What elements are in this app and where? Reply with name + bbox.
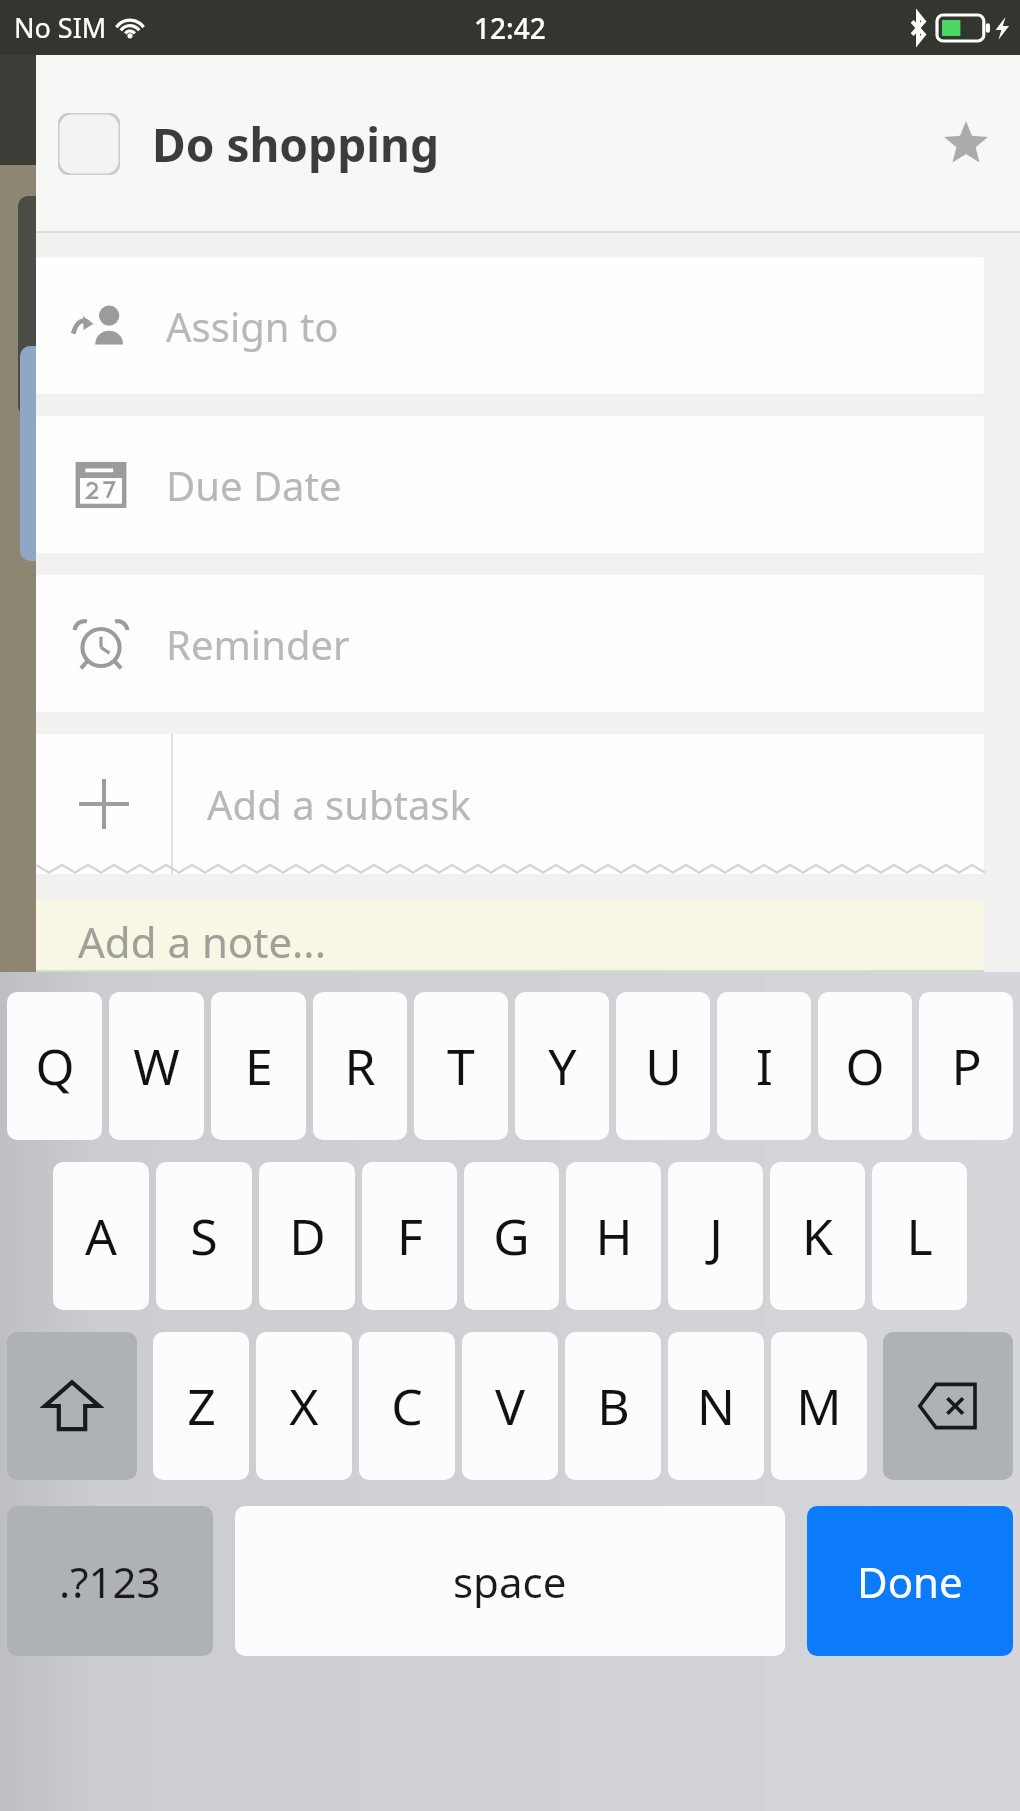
staticText: I: [756, 1032, 773, 1100]
staticText: M: [796, 1372, 842, 1440]
button[interactable]: N: [668, 1332, 764, 1480]
button[interactable]: L: [872, 1162, 967, 1310]
staticText: Add a subtask: [207, 777, 471, 831]
staticText: Due Date: [166, 458, 342, 512]
staticText: Reminder: [166, 617, 350, 671]
staticText: Y: [548, 1032, 577, 1100]
staticText: Z: [187, 1372, 216, 1440]
staticText: G: [493, 1202, 530, 1270]
button[interactable]: P: [919, 992, 1013, 1140]
button[interactable]: A: [53, 1162, 149, 1310]
button[interactable]: .?123: [7, 1506, 213, 1656]
staticText: H: [595, 1202, 633, 1270]
button[interactable]: V: [462, 1332, 558, 1480]
staticText: U: [645, 1032, 682, 1100]
button[interactable]: Assign to: [36, 257, 984, 394]
button[interactable]: Reminder: [36, 575, 984, 712]
button[interactable]: H: [566, 1162, 661, 1310]
staticText: X: [289, 1372, 319, 1440]
staticText: P: [951, 1032, 982, 1100]
staticText: Q: [35, 1032, 75, 1100]
button[interactable]: Due Date: [36, 416, 984, 553]
button[interactable]: I: [717, 992, 811, 1140]
staticText: Add a note...: [78, 913, 326, 970]
staticText: K: [802, 1202, 833, 1270]
button[interactable]: U: [616, 992, 710, 1140]
button[interactable]: C: [359, 1332, 455, 1480]
button[interactable]: S: [156, 1162, 252, 1310]
staticText: Do shopping: [152, 113, 439, 176]
staticText: D: [289, 1202, 326, 1270]
button[interactable]: J: [668, 1162, 763, 1310]
button[interactable]: Backspace: [883, 1332, 1013, 1480]
staticText: L: [906, 1202, 933, 1270]
staticText: F: [397, 1202, 423, 1270]
button[interactable]: B: [565, 1332, 661, 1480]
button[interactable]: D: [259, 1162, 355, 1310]
staticText: R: [344, 1032, 376, 1100]
staticText: 12:42: [474, 9, 546, 47]
staticText: Done: [857, 1553, 963, 1610]
staticText: J: [709, 1202, 723, 1270]
staticText: V: [495, 1372, 525, 1440]
staticText: space: [453, 1553, 567, 1610]
staticText: T: [447, 1032, 475, 1100]
button[interactable]: space: [235, 1506, 785, 1656]
button[interactable]: Y: [515, 992, 609, 1140]
staticText: No SIM: [14, 9, 107, 46]
button[interactable]: Done: [807, 1506, 1013, 1656]
staticText: .?123: [59, 1553, 161, 1610]
button[interactable]: G: [464, 1162, 559, 1310]
button[interactable]: K: [770, 1162, 865, 1310]
button[interactable]: Z: [153, 1332, 249, 1480]
button[interactable]: Q: [7, 992, 102, 1140]
button[interactable]: Add a subtask: [36, 734, 984, 874]
staticText: O: [845, 1032, 885, 1100]
button[interactable]: E: [211, 992, 306, 1140]
staticText: S: [190, 1202, 218, 1270]
button[interactable]: X: [256, 1332, 352, 1480]
button[interactable]: F: [362, 1162, 457, 1310]
button[interactable]: O: [818, 992, 912, 1140]
button[interactable]: Star: [934, 112, 998, 176]
staticText: C: [391, 1372, 423, 1440]
staticText: N: [697, 1372, 735, 1440]
staticText: B: [597, 1372, 630, 1440]
staticText: Assign to: [166, 299, 339, 353]
button[interactable]: Add a note...: [36, 900, 984, 972]
button[interactable]: Complete task: [58, 113, 120, 175]
button[interactable]: W: [109, 992, 204, 1140]
button[interactable]: R: [313, 992, 407, 1140]
button[interactable]: Complete task: [36, 55, 1020, 233]
button[interactable]: T: [414, 992, 508, 1140]
button[interactable]: Shift: [7, 1332, 137, 1480]
staticText: E: [245, 1032, 273, 1100]
button[interactable]: M: [771, 1332, 867, 1480]
staticText: W: [133, 1032, 180, 1100]
staticText: A: [85, 1202, 117, 1270]
